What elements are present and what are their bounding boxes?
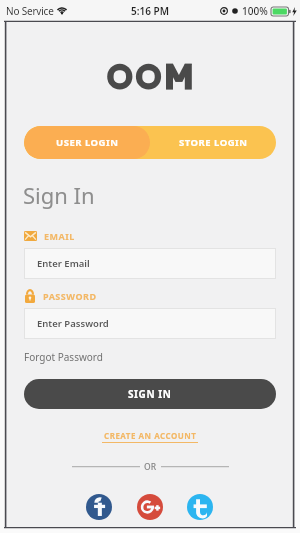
staticText: OR (144, 461, 157, 473)
button[interactable]: STORE LOGIN (150, 126, 276, 159)
button[interactable]: SIGN IN (24, 379, 276, 409)
button[interactable]: Twitter (187, 494, 213, 520)
staticText: EMAIL (44, 230, 75, 242)
button[interactable]: Forgot Password (24, 350, 103, 364)
button[interactable]: Google Plus (137, 494, 163, 520)
button[interactable]: CREATE AN ACCOUNT (104, 430, 197, 441)
staticText: PASSWORD (43, 290, 97, 302)
button[interactable]: Facebook (86, 494, 112, 520)
button[interactable]: USER LOGIN (24, 126, 150, 159)
staticText: No Service (6, 4, 54, 18)
staticText: SIGN IN (128, 387, 172, 401)
button[interactable]: Enter Password (24, 308, 276, 339)
button[interactable]: Enter Email (24, 248, 276, 279)
staticText: Sign In (23, 180, 95, 210)
staticText: USER LOGIN (56, 136, 119, 149)
staticText: Enter Password (37, 317, 109, 330)
staticText: Forgot Password (24, 350, 103, 364)
staticText: Enter Email (37, 257, 90, 270)
staticText: 5:16 PM (131, 4, 169, 18)
staticText: 100% (242, 4, 268, 18)
staticText: STORE LOGIN (179, 136, 248, 149)
